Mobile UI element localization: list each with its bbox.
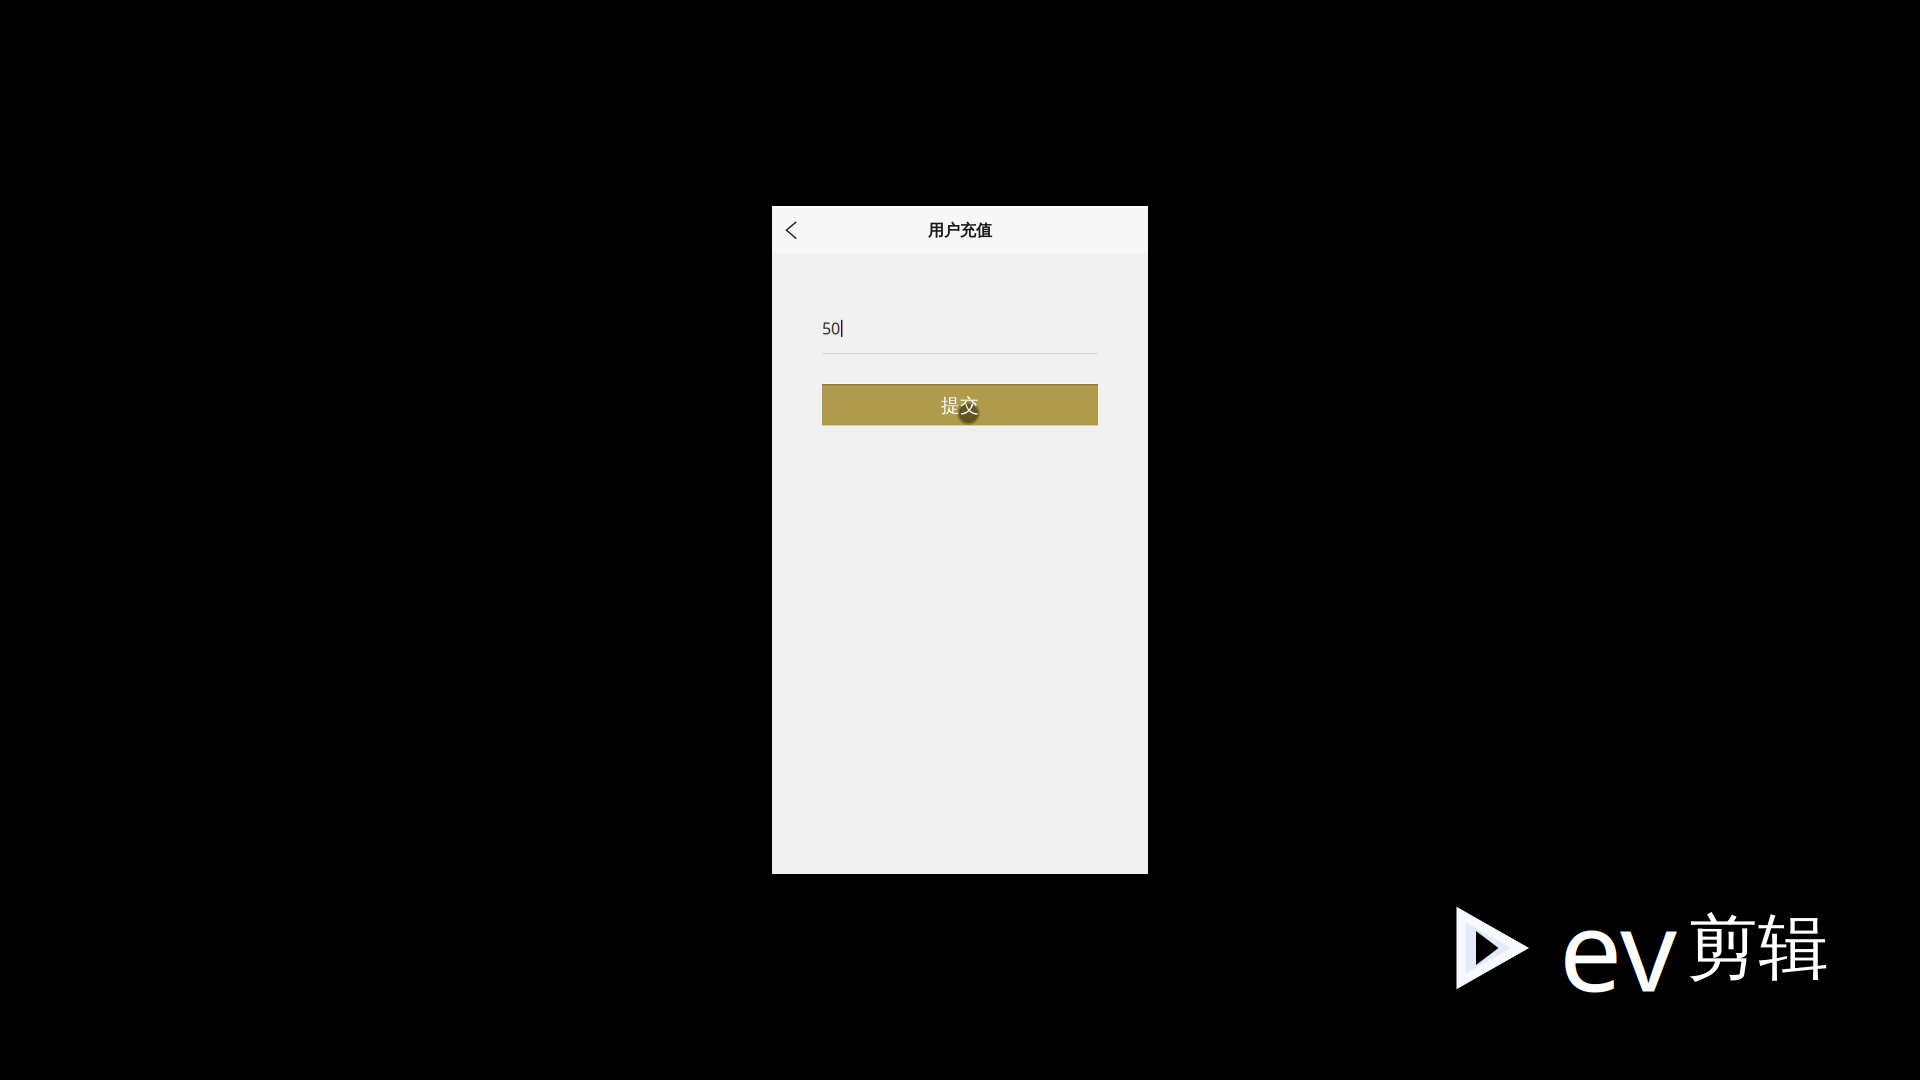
staticText: 剪辑 <box>1687 905 1829 991</box>
staticText: 用户充值 <box>928 221 992 240</box>
staticText: 50 <box>822 318 840 339</box>
button[interactable]: 提交 <box>822 384 1098 427</box>
staticText: ev <box>1559 874 1677 1022</box>
button[interactable]: Back <box>772 209 811 251</box>
staticText: 提交 <box>941 394 979 417</box>
